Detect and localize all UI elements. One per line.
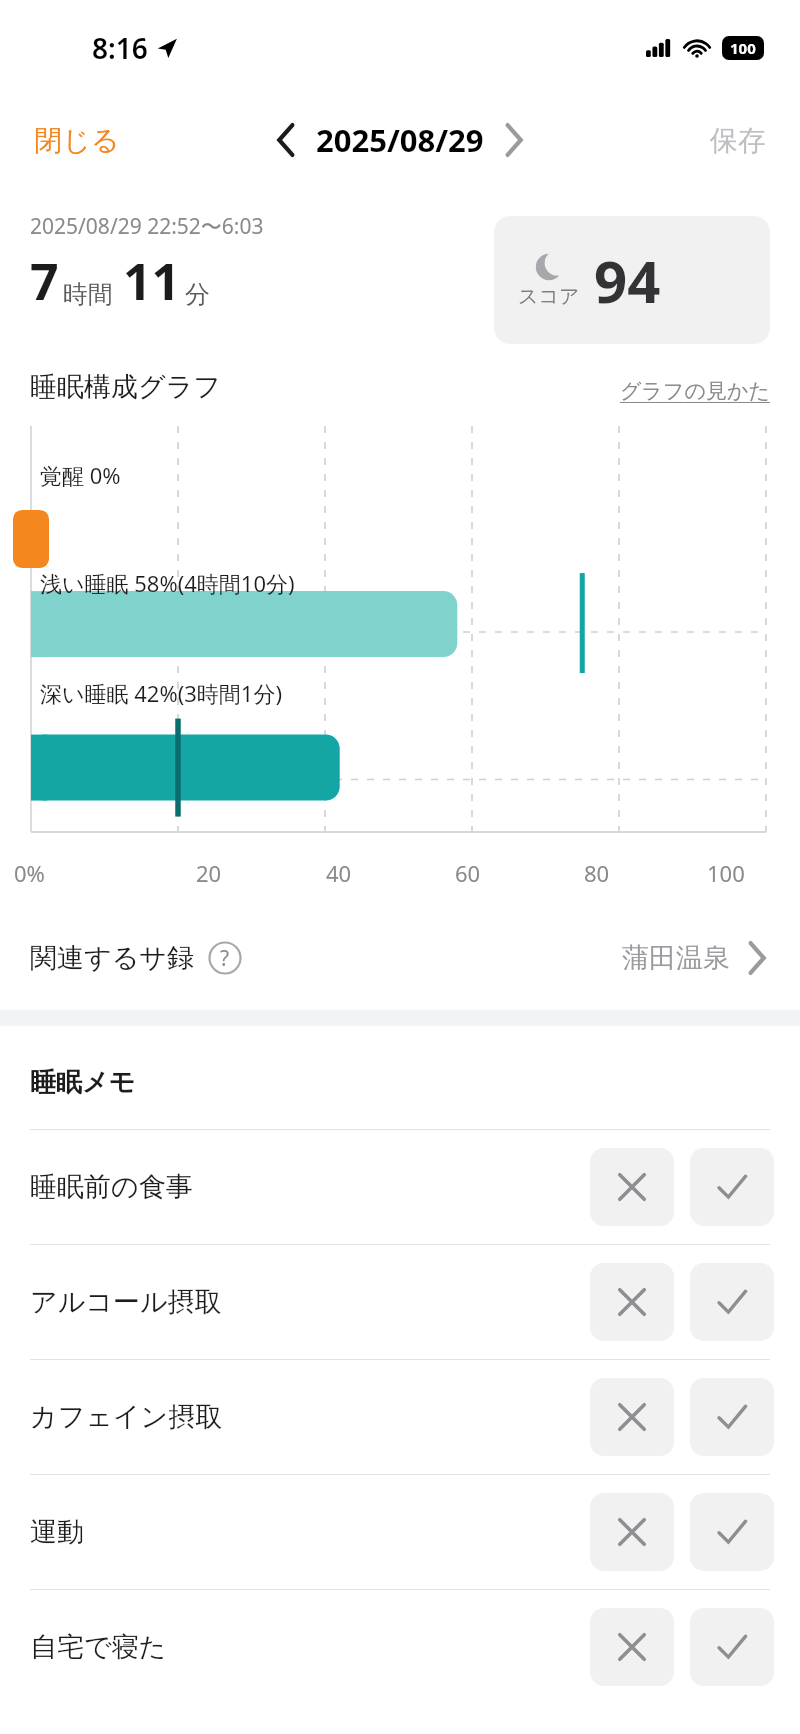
staticText: 40 xyxy=(326,858,352,888)
staticText: ? xyxy=(220,944,230,973)
staticText: スコア xyxy=(518,284,580,309)
button[interactable]: アルコール摂取 いいえ xyxy=(590,1263,674,1341)
staticText: 0% xyxy=(14,858,45,888)
staticText: 100 xyxy=(730,38,756,58)
staticText: カフェイン摂取 xyxy=(30,1400,223,1434)
button[interactable]: アルコール摂取 はい xyxy=(690,1263,774,1341)
staticText: 60 xyxy=(455,858,481,888)
staticText: 11 xyxy=(123,247,181,315)
staticText: 自宅で寝た xyxy=(30,1630,167,1664)
staticText: 20 xyxy=(196,858,222,888)
button[interactable]: 前の日 xyxy=(264,118,308,162)
button[interactable]: 次の日 xyxy=(492,118,536,162)
staticText: 2025/08/29 22:52〜6:03 xyxy=(30,212,264,241)
button[interactable]: 運動 はい xyxy=(690,1493,774,1571)
staticText: 時間 xyxy=(63,279,113,310)
button[interactable]: 保存 xyxy=(710,123,766,158)
staticText: 94 xyxy=(594,241,661,320)
button[interactable]: 運動 いいえ xyxy=(590,1493,674,1571)
staticText: 運動 xyxy=(30,1515,84,1549)
button[interactable]: 閉じる xyxy=(34,123,120,158)
button[interactable]: 関連するサ録 xyxy=(0,928,800,988)
staticText: 関連するサ録 xyxy=(30,941,194,975)
button[interactable]: 睡眠前の食事 いいえ xyxy=(590,1148,674,1226)
staticText: 睡眠メモ xyxy=(30,1066,136,1099)
staticText: 深い睡眠 42%(3時間1分) xyxy=(40,678,283,708)
staticText: 浅い睡眠 58%(4時間10分) xyxy=(40,568,295,598)
button[interactable]: 自宅で寝た はい xyxy=(690,1608,774,1686)
staticText: 分 xyxy=(185,279,210,310)
button[interactable]: カフェイン摂取 いいえ xyxy=(590,1378,674,1456)
staticText: 8:16 xyxy=(92,29,148,67)
staticText: 蒲田温泉 xyxy=(622,941,730,975)
button[interactable]: カフェイン摂取 はい xyxy=(690,1378,774,1456)
staticText: 80 xyxy=(584,858,610,888)
staticText: 覚醒 0% xyxy=(40,460,121,490)
staticText: 2025/08/29 xyxy=(316,119,484,161)
button[interactable]: 自宅で寝た いいえ xyxy=(590,1608,674,1686)
staticText: 7 xyxy=(30,247,59,315)
staticText: 睡眠構成グラフ xyxy=(30,370,221,404)
staticText: 100 xyxy=(707,858,745,888)
button[interactable]: スコア xyxy=(494,216,770,344)
button[interactable]: グラフの見かた xyxy=(620,378,770,404)
staticText: 睡眠前の食事 xyxy=(30,1170,193,1204)
button[interactable]: 睡眠前の食事 はい xyxy=(690,1148,774,1226)
staticText: アルコール摂取 xyxy=(30,1285,222,1319)
